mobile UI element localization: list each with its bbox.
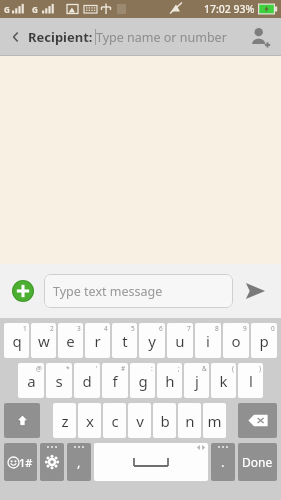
staticText: o bbox=[231, 331, 241, 351]
button[interactable]: p bbox=[251, 323, 277, 358]
staticText: 1 bbox=[23, 324, 27, 333]
staticText: d bbox=[82, 371, 92, 391]
button[interactable]: Add attachment bbox=[8, 276, 38, 306]
button[interactable]: Type text message bbox=[44, 274, 233, 308]
staticText: G bbox=[4, 4, 10, 15]
button[interactable]: g bbox=[130, 363, 155, 398]
staticText: 3 bbox=[77, 324, 81, 333]
button[interactable]: e bbox=[58, 323, 83, 358]
button[interactable]: h bbox=[157, 363, 182, 398]
staticText: : bbox=[151, 364, 153, 373]
staticText: c bbox=[111, 411, 119, 431]
staticText: 0 bbox=[271, 324, 275, 333]
button[interactable]: Add contact bbox=[245, 22, 275, 52]
button[interactable]: Settings bbox=[40, 443, 64, 481]
staticText: v bbox=[136, 411, 144, 431]
staticText: z bbox=[61, 411, 69, 431]
staticText: 7 bbox=[187, 324, 191, 333]
button[interactable]: b bbox=[153, 403, 176, 438]
staticText: b bbox=[160, 411, 170, 431]
button[interactable]: v bbox=[128, 403, 151, 438]
button[interactable]: t bbox=[112, 323, 137, 358]
button[interactable]: c bbox=[103, 403, 126, 438]
button[interactable]: u bbox=[167, 323, 193, 358]
staticText: Done bbox=[242, 454, 273, 470]
button[interactable]: z bbox=[53, 403, 76, 438]
button[interactable]: Done bbox=[238, 443, 277, 481]
staticText: e bbox=[66, 331, 75, 351]
staticText: 8 bbox=[215, 324, 219, 333]
staticText: 1# bbox=[19, 455, 33, 470]
button[interactable]: f bbox=[102, 363, 128, 398]
button[interactable]: w bbox=[31, 323, 56, 358]
staticText: @ bbox=[36, 364, 42, 373]
staticText: m bbox=[207, 411, 222, 431]
staticText: y bbox=[148, 331, 156, 351]
staticText: 5 bbox=[131, 324, 135, 333]
staticText: 6 bbox=[159, 324, 163, 333]
button[interactable]: 1# bbox=[4, 443, 37, 481]
staticText: # bbox=[121, 364, 126, 373]
staticText: x bbox=[86, 411, 94, 431]
staticText: 9 bbox=[243, 324, 247, 333]
staticText: Recipient: bbox=[28, 28, 93, 46]
button[interactable]: n bbox=[178, 403, 201, 438]
staticText: . bbox=[221, 453, 225, 471]
staticText: g bbox=[138, 371, 148, 391]
staticText: j bbox=[195, 371, 199, 391]
button[interactable]: i bbox=[195, 323, 221, 358]
button[interactable]: m bbox=[203, 403, 226, 438]
staticText: 17:02 93% bbox=[204, 2, 255, 16]
button[interactable]: Send bbox=[237, 273, 273, 309]
staticText: t bbox=[122, 331, 128, 351]
button[interactable]: o bbox=[223, 323, 249, 358]
button[interactable]: y bbox=[139, 323, 165, 358]
staticText: q bbox=[12, 331, 22, 351]
staticText: n bbox=[185, 411, 195, 431]
button[interactable]: Space bbox=[94, 443, 208, 481]
button[interactable]: Type name or number bbox=[96, 18, 245, 56]
staticText: k bbox=[219, 371, 228, 391]
button[interactable]: k bbox=[211, 363, 236, 398]
button[interactable]: Back bbox=[6, 27, 26, 47]
staticText: s bbox=[55, 371, 63, 391]
button[interactable]: r bbox=[85, 323, 110, 358]
staticText: l bbox=[249, 371, 253, 391]
button[interactable]: x bbox=[78, 403, 101, 438]
button[interactable]: Shift bbox=[4, 403, 40, 438]
staticText: f bbox=[112, 371, 118, 391]
staticText: ( bbox=[232, 364, 234, 373]
staticText: h bbox=[165, 371, 175, 391]
staticText: 2 bbox=[50, 324, 54, 333]
button[interactable]: , bbox=[67, 443, 91, 481]
staticText: p bbox=[259, 331, 269, 351]
button[interactable]: q bbox=[4, 323, 29, 358]
button[interactable]: j bbox=[184, 363, 209, 398]
staticText: u bbox=[175, 331, 185, 351]
staticText: ; bbox=[178, 364, 180, 373]
button[interactable]: . bbox=[211, 443, 235, 481]
staticText: w bbox=[38, 331, 50, 351]
button[interactable]: Backspace bbox=[238, 403, 277, 438]
staticText: G bbox=[32, 4, 38, 15]
staticText: r bbox=[94, 331, 101, 351]
button[interactable]: a bbox=[18, 363, 44, 398]
staticText: * bbox=[66, 364, 70, 373]
staticText: 4 bbox=[104, 324, 108, 333]
staticText: ' bbox=[96, 364, 98, 373]
button[interactable]: l bbox=[238, 363, 263, 398]
staticText: & bbox=[202, 364, 207, 373]
staticText: ) bbox=[259, 364, 261, 373]
staticText: Type name or number bbox=[96, 29, 227, 46]
staticText: a bbox=[27, 371, 36, 391]
staticText: , bbox=[77, 453, 81, 471]
staticText: Type text message bbox=[53, 283, 163, 300]
staticText: i bbox=[206, 331, 210, 351]
button[interactable]: d bbox=[74, 363, 100, 398]
button[interactable]: s bbox=[46, 363, 72, 398]
